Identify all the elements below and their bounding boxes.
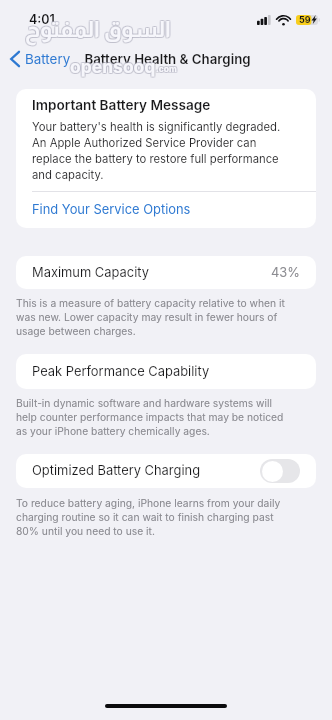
staticText: السوق المفتوح <box>26 17 172 42</box>
staticText: opensooq <box>69 55 155 76</box>
other: Battery 59 percent, charging <box>296 14 320 25</box>
staticText: .com <box>156 65 177 75</box>
staticText: Your battery's health is significantly d… <box>32 120 281 182</box>
staticText: السوق المفتوح <box>26 18 172 43</box>
button[interactable]: Maximum Capacity <box>16 256 316 289</box>
staticText: opensooq <box>69 56 155 77</box>
staticText: السوق المفتوح <box>24 17 170 42</box>
button[interactable]: Back to Battery <box>0 45 86 73</box>
staticText: opensooq <box>70 55 156 76</box>
staticText: This is a measure of battery capacity re… <box>16 297 285 337</box>
staticText: .com <box>156 63 177 73</box>
staticText: Peak Performance Capability <box>32 364 210 380</box>
staticText: opensooq <box>71 56 157 77</box>
button[interactable]: Peak Performance Capability <box>16 354 316 389</box>
staticText: opensooq <box>71 55 157 76</box>
staticText: .com <box>157 65 178 75</box>
staticText: Battery Health & Charging <box>84 51 251 67</box>
staticText: .com <box>155 64 176 74</box>
staticText: 59 <box>299 14 311 25</box>
staticText: opensooq <box>69 57 155 78</box>
staticText: .com <box>157 64 178 74</box>
button[interactable]: Find Your Service Options <box>16 192 316 228</box>
staticText: opensooq <box>71 57 157 78</box>
button[interactable]: Optimized Battery Charging toggle <box>260 459 300 483</box>
staticText: السوق المفتوح <box>24 18 170 43</box>
staticText: السوق المفتوح <box>25 18 171 43</box>
staticText: Battery <box>25 51 71 67</box>
staticText: .com <box>155 63 176 73</box>
staticText: السوق المفتوح <box>25 17 171 42</box>
staticText: .com <box>156 64 177 74</box>
staticText: To reduce battery aging, iPhone learns f… <box>16 497 281 537</box>
staticText: opensooq <box>70 57 156 78</box>
staticText: Find Your Service Options <box>32 202 191 218</box>
staticText: 4:01 <box>29 12 55 27</box>
staticText: .com <box>157 63 178 73</box>
staticText: Optimized Battery Charging <box>32 463 201 479</box>
staticText: opensooq <box>70 56 156 77</box>
staticText: السوق المفتوح <box>25 16 171 41</box>
staticText: Maximum Capacity <box>32 265 149 281</box>
staticText: السوق المفتوح <box>24 16 170 41</box>
staticText: .com <box>155 65 176 75</box>
staticText: السوق المفتوح <box>26 16 172 41</box>
staticText: Important Battery Message <box>32 97 211 113</box>
staticText: 43% <box>271 265 300 281</box>
staticText: Built-in dynamic software and hardware s… <box>16 397 284 437</box>
